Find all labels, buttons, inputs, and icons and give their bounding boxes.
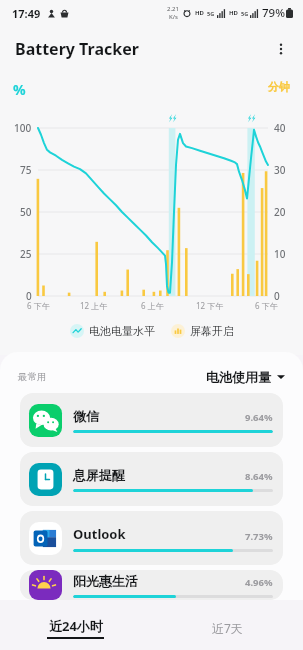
button[interactable]: Outlook [20,511,283,565]
staticText: 近24小时 [49,617,103,635]
staticText: 微信 [73,408,99,424]
staticText: 6 下午 [27,300,50,311]
staticText: 5G [241,10,249,17]
staticText: 电池电量水平 [89,324,155,338]
staticText: 屏幕开启 [190,324,234,338]
staticText: 近7天 [212,620,243,636]
staticText: 0 [26,289,32,303]
staticText: 7.73% [245,530,273,543]
staticText: Outlook [73,525,126,543]
staticText: 电池使用量 [206,369,271,385]
staticText: HD [195,9,204,17]
button[interactable]: 近24小时 [0,606,151,650]
staticText: 阳光惠生活 [73,573,138,589]
staticText: 100 [14,121,32,135]
staticText: 息屏提醒 [73,467,125,483]
button[interactable]: 息屏提醒 [20,452,283,506]
staticText: 4.96% [245,576,273,589]
staticText: 8.64% [245,470,273,483]
staticText: 79% [262,5,285,21]
button[interactable]: 微信 [20,393,283,447]
staticText: 6 下午 [255,300,278,311]
button[interactable]: 阳光惠生活 [20,570,283,600]
staticText: 最常用 [18,371,47,383]
staticText: 9.64% [245,411,273,424]
staticText: 2.21 [167,5,179,13]
staticText: 30 [274,163,286,177]
staticText: 分钟 [268,80,290,94]
staticText: 12 上午 [80,300,108,311]
staticText: 75 [20,163,32,177]
staticText: 5G [207,10,215,17]
button[interactable]: 近7天 [151,606,303,650]
staticText: 12 下午 [196,300,224,311]
staticText: HD [229,9,238,17]
button[interactable]: 电池使用量 [206,369,285,385]
staticText: 20 [274,205,286,219]
staticText: K/s [169,13,178,21]
staticText: 25 [20,247,32,261]
staticText: 0 [274,289,280,303]
staticText: Battery Tracker [15,38,139,60]
staticText: 17:49 [12,6,41,21]
staticText: 10 [274,247,286,261]
staticText: 6 上午 [141,300,164,311]
button[interactable]: More options [267,35,295,63]
staticText: % [13,80,26,99]
staticText: 40 [274,121,286,135]
staticText: 50 [20,205,32,219]
